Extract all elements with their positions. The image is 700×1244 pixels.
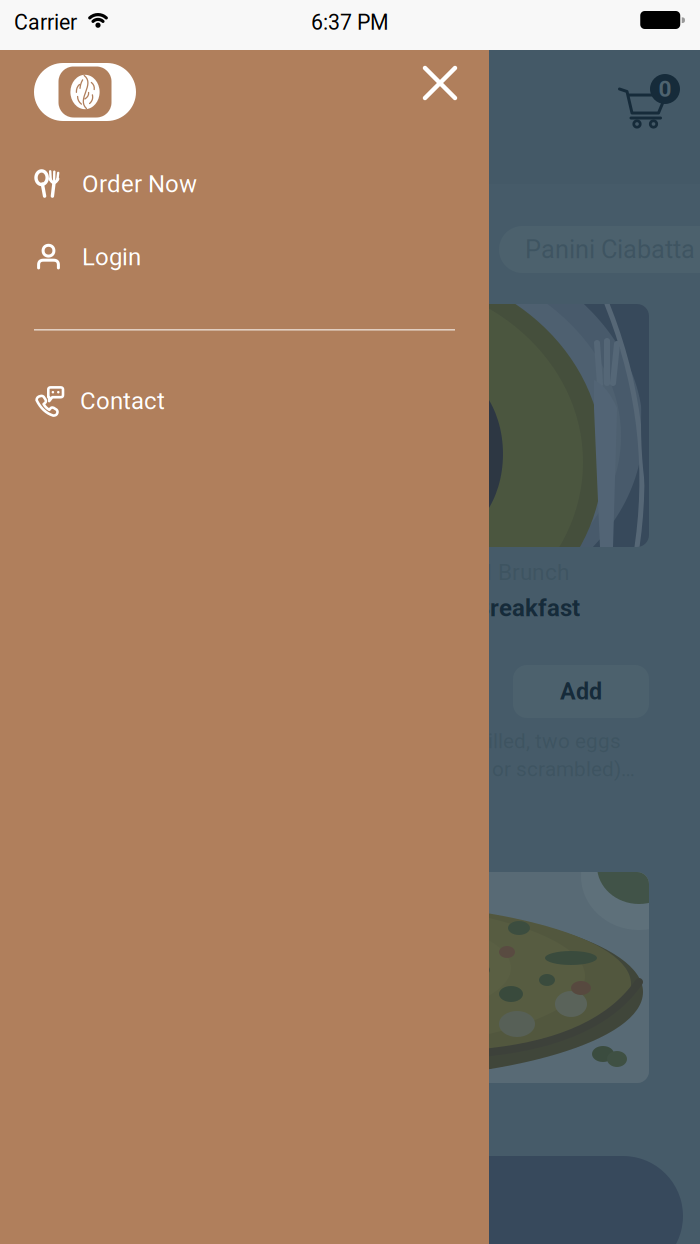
staticText: (Bread, grilled, two eggs [399, 729, 621, 753]
staticText: Carrier [14, 10, 77, 35]
staticText: Contact [80, 387, 165, 415]
staticText: Login [82, 243, 141, 271]
button[interactable]: Order Now [34, 160, 455, 208]
staticText: 0 [658, 76, 671, 102]
staticText: Add [560, 678, 602, 705]
button[interactable]: Cart, 0 items [613, 78, 675, 136]
staticText: Order Now [82, 170, 197, 198]
staticText: (poached or scrambled)… [400, 757, 635, 781]
button[interactable]: Login [34, 233, 455, 281]
staticText: Panini Ciabatta [525, 235, 695, 264]
button[interactable]: Close menu [416, 59, 464, 107]
button[interactable]: Contact [34, 377, 455, 425]
button[interactable]: Add [513, 665, 649, 718]
staticText: 6:37 PM [311, 10, 389, 35]
staticText: Featured Brunch [405, 559, 569, 586]
staticText: All Day Breakfast [394, 594, 580, 622]
